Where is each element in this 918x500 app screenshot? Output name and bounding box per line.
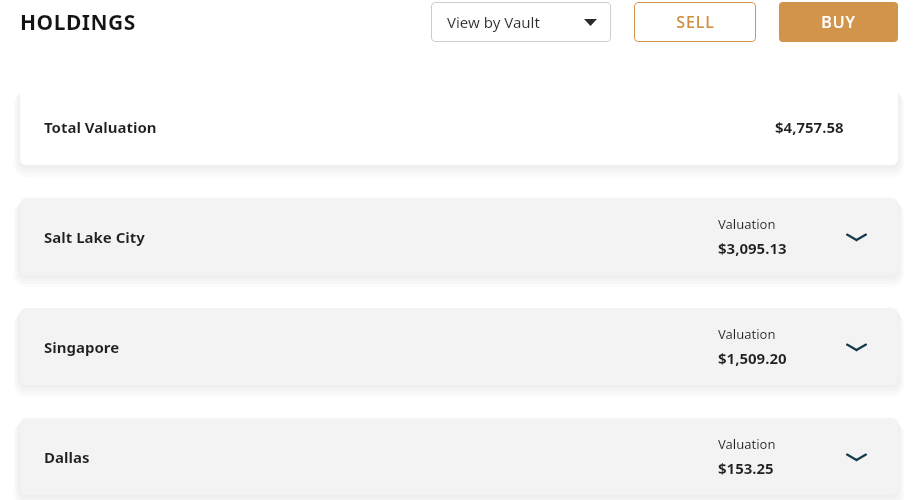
button[interactable]: Salt Lake City [20, 198, 898, 275]
staticText: SELL [676, 11, 715, 33]
staticText: View by Vault [447, 12, 540, 32]
staticText: $4,757.58 [775, 117, 844, 137]
button[interactable]: Expand Singapore [836, 327, 876, 367]
button[interactable]: View by Vault [431, 2, 611, 42]
staticText: Valuation [718, 435, 776, 453]
staticText: Valuation [718, 325, 776, 343]
button[interactable]: Expand Salt Lake City [836, 217, 876, 257]
staticText: $153.25 [718, 458, 774, 478]
button[interactable]: BUY [779, 2, 898, 42]
staticText: Salt Lake City [44, 227, 145, 247]
staticText: $3,095.13 [718, 238, 787, 258]
button[interactable]: Dallas [20, 418, 898, 495]
staticText: Total Valuation [44, 117, 157, 137]
staticText: Valuation [718, 215, 776, 233]
staticText: $1,509.20 [718, 348, 787, 368]
button[interactable]: Singapore [20, 308, 898, 385]
staticText: Dallas [44, 447, 90, 467]
staticText: BUY [821, 11, 856, 33]
staticText: Singapore [44, 337, 120, 357]
button[interactable]: SELL [634, 2, 756, 42]
button[interactable]: Expand Dallas [836, 437, 876, 477]
button[interactable]: Total Valuation [20, 88, 898, 165]
staticText: HOLDINGS [20, 8, 136, 37]
